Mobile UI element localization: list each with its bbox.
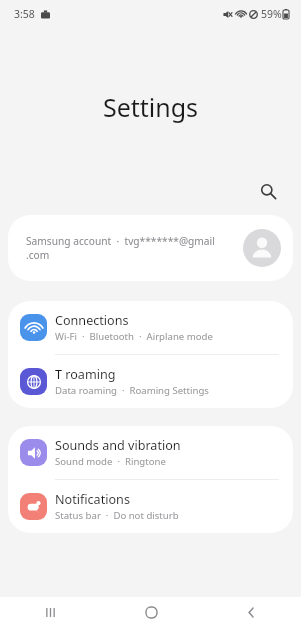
staticText: 3:58 bbox=[14, 7, 35, 21]
staticText: T roaming bbox=[55, 366, 116, 383]
staticText: Settings bbox=[0, 90, 301, 124]
button[interactable]: Notifications bbox=[8, 480, 293, 533]
staticText: Samsung account · tvg*******@gmail bbox=[26, 234, 215, 248]
button[interactable]: Samsung account · tvg*******@gmail bbox=[8, 215, 293, 281]
staticText: 59% bbox=[261, 7, 282, 21]
button[interactable]: Home bbox=[101, 597, 201, 627]
button[interactable]: Sounds and vibration bbox=[8, 426, 293, 479]
staticText: Notifications bbox=[55, 491, 130, 508]
staticText: Sound mode · Ringtone bbox=[55, 455, 166, 468]
button[interactable]: Back bbox=[201, 597, 301, 627]
staticText: Data roaming · Roaming Settings bbox=[55, 384, 209, 397]
staticText: Connections bbox=[55, 312, 129, 329]
button[interactable]: Connections bbox=[8, 301, 293, 354]
button[interactable]: T roaming bbox=[8, 355, 293, 408]
staticText: Status bar · Do not disturb bbox=[55, 509, 179, 522]
staticText: .com bbox=[26, 248, 50, 262]
button[interactable]: Recents bbox=[0, 597, 101, 627]
staticText: Sounds and vibration bbox=[55, 437, 181, 454]
button[interactable]: Search bbox=[253, 176, 283, 206]
staticText: Wi-Fi · Bluetooth · Airplane mode bbox=[55, 330, 213, 343]
